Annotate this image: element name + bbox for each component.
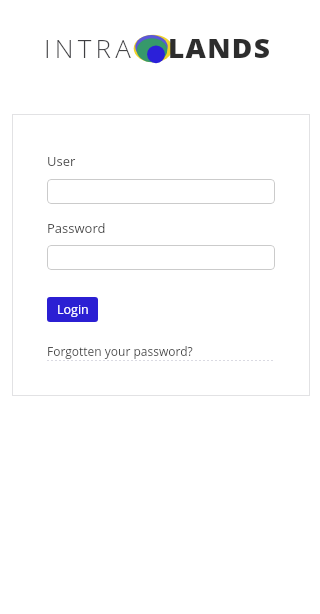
button[interactable] bbox=[47, 179, 275, 204]
button[interactable] bbox=[47, 245, 275, 270]
button[interactable]: Forgotten your password? bbox=[47, 343, 275, 361]
staticText: User bbox=[47, 152, 76, 170]
staticText: Forgotten your password? bbox=[47, 343, 193, 359]
staticText: LANDS bbox=[168, 30, 271, 65]
button[interactable]: Login bbox=[47, 297, 98, 322]
staticText: Password bbox=[47, 219, 106, 237]
staticText: Login bbox=[57, 301, 89, 318]
staticText: INTRA bbox=[44, 30, 135, 65]
